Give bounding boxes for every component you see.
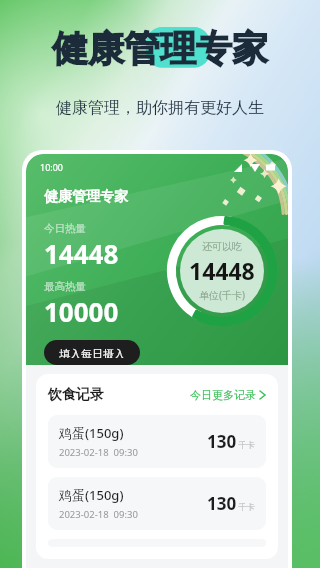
button[interactable]: 鸡蛋(150g): [48, 477, 266, 530]
staticText: 填入每日摄入: [59, 347, 125, 358]
staticText: 健康管理专家: [44, 188, 128, 206]
staticText: 130: [207, 430, 237, 453]
staticText: 10000: [44, 294, 119, 329]
staticText: 2023-02-18 09:30: [59, 508, 138, 521]
staticText: 健康管理专家: [52, 26, 268, 71]
staticText: 2023-02-18 09:30: [59, 446, 138, 459]
staticText: 单位(千卡): [199, 288, 245, 302]
staticText: 千卡: [238, 502, 255, 513]
staticText: 今日热量: [44, 222, 86, 235]
staticText: 鸡蛋(150g): [59, 424, 124, 442]
staticText: 健康管理，助你拥有更好人生: [56, 98, 264, 118]
button[interactable]: 鸡蛋(150g): [48, 415, 266, 468]
staticText: 千卡: [238, 440, 255, 451]
staticText: 最高热量: [44, 280, 86, 293]
button[interactable]: 今日更多记录: [190, 388, 266, 402]
staticText: 14448: [44, 236, 119, 271]
staticText: 10:00: [40, 161, 64, 173]
staticText: 饮食记录: [48, 386, 104, 404]
staticText: 130: [207, 492, 237, 515]
staticText: 还可以吃: [202, 240, 242, 253]
staticText: 鸡蛋(150g): [59, 486, 124, 504]
staticText: 14448: [189, 255, 255, 286]
staticText: 今日更多记录: [190, 388, 256, 402]
button[interactable]: 填入每日摄入: [44, 340, 140, 365]
